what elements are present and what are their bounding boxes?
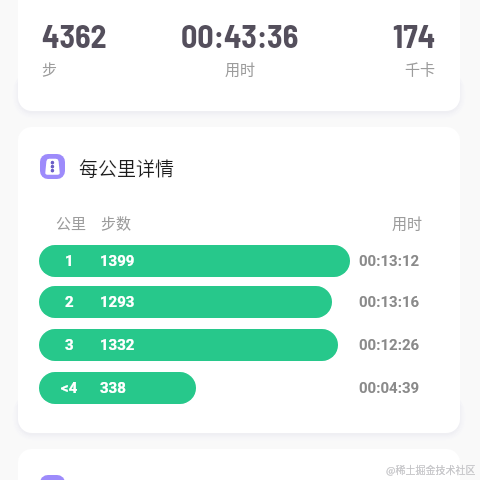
button[interactable]: 3	[39, 329, 460, 361]
staticText: 2	[65, 293, 74, 311]
staticText: 338	[100, 379, 126, 397]
staticText: 步数	[101, 212, 132, 234]
staticText: 用时	[225, 58, 256, 80]
staticText: 公里	[56, 212, 87, 234]
staticText: 1332	[100, 336, 135, 354]
staticText: 00:13:12	[359, 252, 420, 270]
staticText: 3	[65, 336, 74, 354]
button[interactable]: Section icon	[18, 449, 460, 480]
button[interactable]: 4362	[18, 0, 460, 111]
staticText: <4	[61, 379, 78, 397]
button[interactable]: Per kilometre details	[40, 154, 175, 182]
staticText: 1	[65, 252, 74, 270]
other: Section icon	[40, 475, 65, 480]
staticText: @稀土掘金技术社区	[386, 462, 476, 476]
button[interactable]: 1	[39, 245, 460, 277]
button[interactable]: 2	[39, 286, 460, 318]
staticText: 每公里详情	[79, 154, 175, 182]
staticText: 千卡	[405, 58, 436, 80]
staticText: 00:43:36	[181, 16, 299, 54]
staticText: 174	[393, 16, 436, 54]
staticText: 步	[42, 58, 58, 80]
staticText: 4362	[42, 16, 107, 54]
button[interactable]: <4	[39, 372, 460, 404]
staticText: 00:13:16	[359, 293, 420, 311]
staticText: 用时	[392, 212, 423, 234]
staticText: 00:04:39	[359, 379, 420, 397]
staticText: 1293	[100, 293, 135, 311]
staticText: 00:12:26	[359, 336, 420, 354]
other: Per kilometre details	[40, 154, 65, 179]
staticText: 1399	[100, 252, 135, 270]
